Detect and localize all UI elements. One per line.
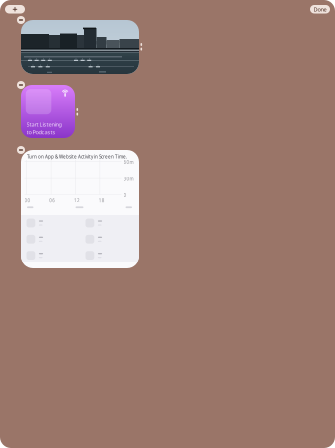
button[interactable]: Screen Time Widget: [21, 150, 139, 268]
button[interactable]: Remove Widget: [17, 16, 25, 24]
staticText: 00: [24, 197, 30, 203]
staticText: 60m: [123, 159, 133, 165]
button[interactable]: Remove Widget: [17, 146, 25, 154]
staticText: to Podcasts: [26, 128, 55, 136]
button[interactable]: Photos Widget: [21, 20, 139, 74]
staticText: Done: [313, 5, 326, 13]
staticText: 18: [99, 197, 105, 203]
staticText: 0: [123, 192, 126, 198]
button[interactable]: Remove Widget: [17, 81, 25, 89]
staticText: Start Listening: [26, 120, 61, 128]
button[interactable]: Podcasts Widget: [21, 85, 75, 138]
staticText: 30m: [123, 176, 133, 182]
staticText: 06: [49, 197, 55, 203]
button[interactable]: Done: [310, 5, 330, 13]
staticText: 12: [74, 197, 80, 203]
staticText: Turn on App & Website Activity in Screen…: [27, 154, 127, 160]
button[interactable]: Add Widget: [5, 5, 25, 13]
